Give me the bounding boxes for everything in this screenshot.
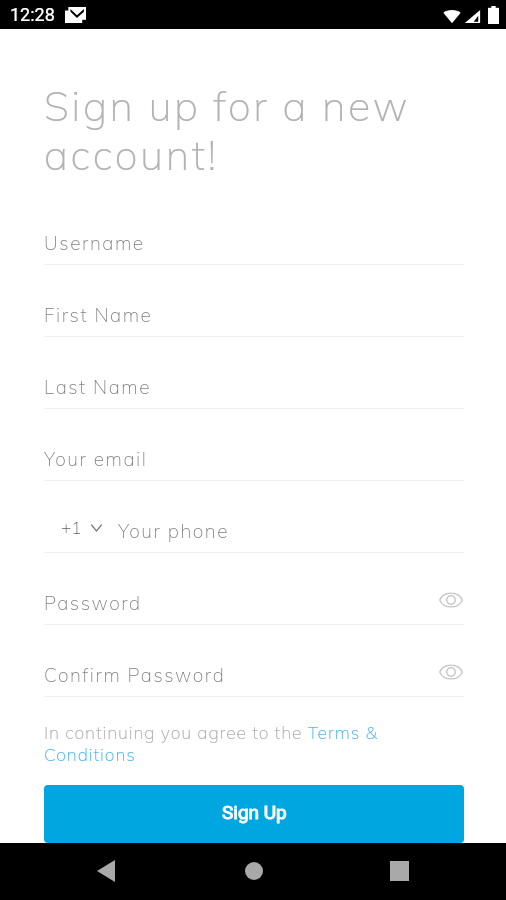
button[interactable]: Back bbox=[80, 845, 132, 897]
button[interactable]: Password bbox=[44, 568, 464, 624]
button[interactable]: Recent apps bbox=[373, 845, 425, 897]
staticText: Password bbox=[44, 591, 142, 615]
staticText: Confirm Password bbox=[44, 663, 226, 687]
button[interactable]: Home bbox=[228, 845, 280, 897]
staticText: First Name bbox=[44, 303, 153, 327]
staticText: Sign Up bbox=[222, 801, 287, 823]
button[interactable]: Confirm Password bbox=[44, 640, 464, 696]
button[interactable]: Your email bbox=[44, 424, 464, 480]
staticText: 12:28 bbox=[10, 4, 55, 25]
button[interactable]: Sign Up bbox=[44, 785, 464, 843]
button[interactable]: In continuing you agree to the Terms & C… bbox=[44, 721, 389, 765]
button[interactable]: Last Name bbox=[44, 352, 464, 408]
button[interactable]: +1 bbox=[61, 517, 102, 538]
staticText: Your email bbox=[44, 447, 148, 471]
staticText: Username bbox=[44, 231, 145, 255]
button[interactable]: Show password bbox=[434, 583, 468, 617]
staticText: Your phone bbox=[118, 519, 230, 543]
staticText: Sign up for a new account! bbox=[44, 80, 411, 180]
staticText: +1 bbox=[61, 517, 82, 538]
button[interactable]: First Name bbox=[44, 280, 464, 336]
button[interactable]: Show password bbox=[434, 655, 468, 689]
staticText: Last Name bbox=[44, 375, 152, 399]
button[interactable]: Username bbox=[44, 208, 464, 264]
